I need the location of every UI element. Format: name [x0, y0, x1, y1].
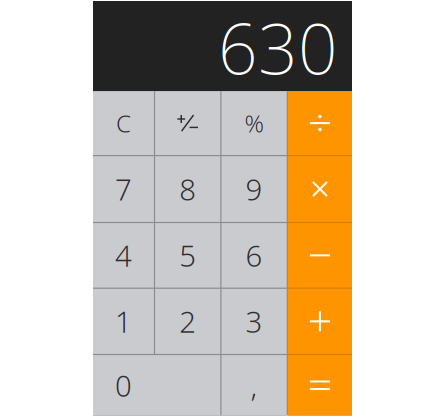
staticText: 4	[115, 236, 132, 275]
staticText: 7	[115, 170, 132, 209]
button[interactable]: 8	[155, 156, 220, 222]
staticText: 0	[115, 366, 132, 405]
button[interactable]: Divide	[288, 91, 352, 155]
staticText: C	[116, 107, 131, 139]
button[interactable]: 2	[155, 289, 220, 354]
button[interactable]: 1	[93, 289, 154, 354]
button[interactable]: Minus	[288, 223, 352, 288]
button[interactable]: 7	[93, 156, 154, 222]
staticText: %	[245, 107, 264, 139]
staticText: 1	[115, 302, 132, 341]
button[interactable]: Plus	[288, 289, 352, 354]
button[interactable]: ,	[221, 355, 287, 415]
button[interactable]: Plus minus	[155, 91, 220, 155]
staticText: 6	[246, 236, 263, 275]
staticText: 5	[179, 236, 196, 275]
staticText: 3	[246, 302, 263, 341]
button[interactable]: 5	[155, 223, 220, 288]
button[interactable]: 9	[221, 156, 287, 222]
button[interactable]: 0	[93, 355, 220, 415]
button[interactable]: 3	[221, 289, 287, 354]
button[interactable]: 6	[221, 223, 287, 288]
button[interactable]: C	[93, 91, 154, 155]
staticText: 630	[218, 2, 338, 94]
button[interactable]: Equals	[288, 355, 352, 415]
staticText: 2	[179, 302, 196, 341]
staticText: 8	[179, 170, 196, 209]
button[interactable]: %	[221, 91, 287, 155]
button[interactable]: 4	[93, 223, 154, 288]
staticText: 9	[246, 170, 263, 209]
staticText: ,	[251, 366, 258, 405]
button[interactable]: Multiply	[288, 156, 352, 222]
